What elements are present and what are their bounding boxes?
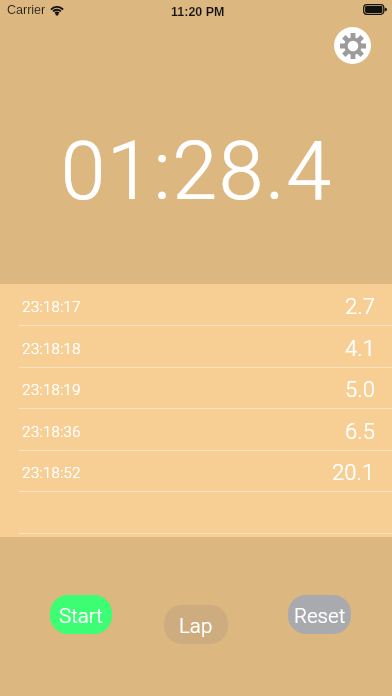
- staticText: 23:18:17: [22, 296, 81, 319]
- button[interactable]: 23:18:52: [0, 450, 392, 492]
- staticText: Start: [59, 602, 103, 632]
- staticText: Lap: [179, 612, 213, 642]
- staticText: Carrier: [7, 3, 46, 17]
- button[interactable]: Lap: [164, 605, 228, 644]
- staticText: 11:20 PM: [171, 5, 225, 19]
- staticText: 4.1: [345, 333, 375, 365]
- button[interactable]: 23:18:17: [0, 284, 392, 326]
- staticText: 6.5: [345, 416, 375, 448]
- staticText: Reset: [294, 602, 346, 632]
- button[interactable]: 23:18:36: [0, 409, 392, 451]
- staticText: 23:18:52: [22, 462, 81, 485]
- button[interactable]: Reset: [288, 595, 351, 634]
- button[interactable]: 23:18:19: [0, 367, 392, 409]
- button[interactable]: 23:18:18: [0, 326, 392, 368]
- staticText: 20.1: [332, 457, 375, 489]
- staticText: 23:18:18: [22, 338, 81, 361]
- staticText: 5.0: [345, 374, 375, 406]
- button[interactable]: Settings: [334, 27, 371, 64]
- staticText: 01:28.4: [60, 114, 333, 233]
- button[interactable]: Start: [50, 595, 112, 634]
- staticText: 23:18:19: [22, 379, 81, 402]
- staticText: 23:18:36: [22, 421, 81, 444]
- staticText: 2.7: [345, 291, 375, 323]
